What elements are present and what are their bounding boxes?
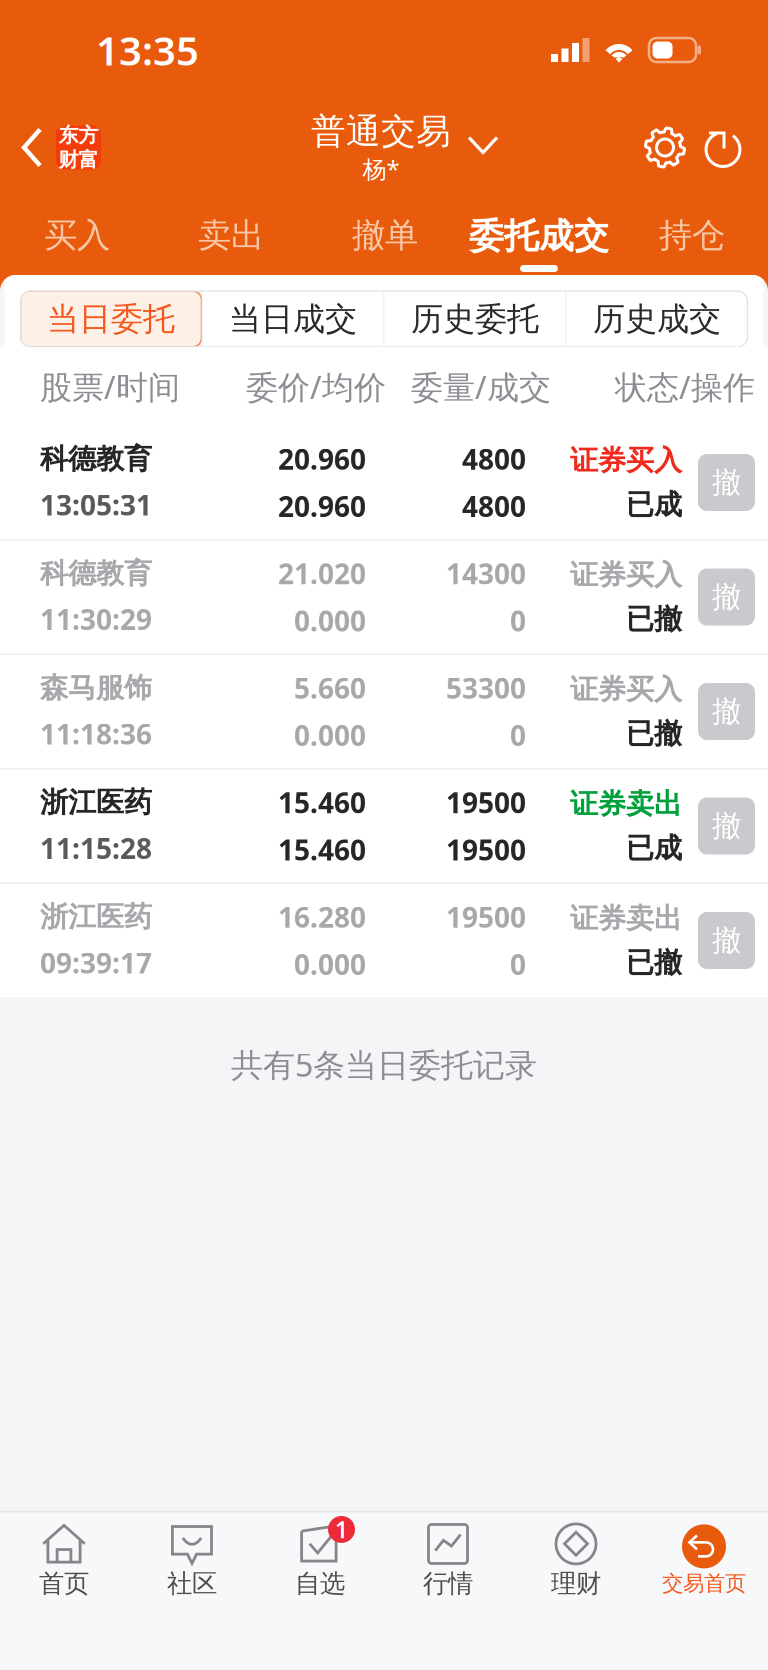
staticText: 53300 xyxy=(446,669,526,706)
staticText: 当日成交 xyxy=(229,299,357,339)
button[interactable]: 当日委托 xyxy=(20,291,201,347)
staticText: 15.460 xyxy=(278,784,366,821)
staticText: 已成 xyxy=(626,487,682,522)
staticText: 20.960 xyxy=(278,440,366,477)
staticText: 普通交易 xyxy=(311,110,451,153)
staticText: 5.660 xyxy=(294,669,366,706)
staticText: 状态/操作 xyxy=(615,365,755,408)
staticText: 浙江医药 xyxy=(40,785,152,820)
staticText: 13:35 xyxy=(96,23,199,76)
staticText: 11:18:36 xyxy=(40,715,152,752)
staticText: 证券卖出 xyxy=(570,787,682,821)
button[interactable]: 行情 xyxy=(384,1520,512,1600)
staticText: 自选 xyxy=(295,1568,345,1599)
staticText: 委量/成交 xyxy=(411,365,551,408)
staticText: 0.000 xyxy=(294,716,366,754)
button[interactable]: 撤 xyxy=(698,912,755,969)
staticText: 已撤 xyxy=(626,602,682,636)
staticText: 撤 xyxy=(712,693,741,729)
staticText: 09:39:17 xyxy=(40,944,152,981)
staticText: 19500 xyxy=(446,898,526,935)
staticText: 东方 xyxy=(58,123,98,147)
staticText: 森马服饰 xyxy=(40,671,152,705)
staticText: 0 xyxy=(510,602,526,639)
staticText: 撤 xyxy=(712,579,741,615)
button[interactable]: 1 xyxy=(256,1520,384,1600)
staticText: 杨* xyxy=(362,153,399,185)
staticText: 已成 xyxy=(626,831,682,865)
staticText: 股票/时间 xyxy=(40,365,180,408)
staticText: 1 xyxy=(335,1514,348,1544)
button[interactable]: 当日成交 xyxy=(202,291,383,347)
staticText: 13:05:31 xyxy=(40,486,152,523)
staticText: 14300 xyxy=(446,555,526,592)
staticText: 委托成交 xyxy=(469,215,609,258)
staticText: 浙江医药 xyxy=(40,900,152,934)
staticText: 0 xyxy=(510,945,526,983)
staticText: 共有5条当日委托记录 xyxy=(231,1043,537,1085)
button[interactable]: 历史委托 xyxy=(384,291,565,347)
button[interactable]: 撤 xyxy=(698,797,755,854)
staticText: 20.960 xyxy=(278,487,366,525)
staticText: 证券买入 xyxy=(570,558,682,592)
button[interactable]: 交易首页 xyxy=(640,1520,768,1600)
staticText: 历史委托 xyxy=(411,299,539,339)
staticText: 证券买入 xyxy=(570,443,682,477)
staticText: 证券买入 xyxy=(570,672,682,706)
button[interactable]: 撤单 xyxy=(352,195,418,275)
button[interactable]: 理财 xyxy=(512,1520,640,1600)
button[interactable]: 社区 xyxy=(128,1520,256,1600)
staticText: 撤 xyxy=(712,922,741,958)
staticText: 科德教育 xyxy=(40,442,152,476)
staticText: 4800 xyxy=(462,487,526,525)
button[interactable]: 刷新 xyxy=(700,124,746,170)
staticText: 15.460 xyxy=(278,831,366,868)
button[interactable]: 委托成交 xyxy=(469,195,609,275)
button[interactable]: 买入 xyxy=(44,195,110,275)
staticText: 证券卖出 xyxy=(570,901,682,935)
staticText: 0 xyxy=(510,716,526,754)
button[interactable]: 返回 东方财富 xyxy=(20,125,101,169)
staticText: 科德教育 xyxy=(40,556,152,591)
staticText: 撤 xyxy=(712,808,741,844)
staticText: 撤 xyxy=(712,464,741,500)
button[interactable]: 撤 xyxy=(698,454,755,511)
button[interactable]: 撤 xyxy=(698,683,755,740)
staticText: 历史成交 xyxy=(593,299,721,339)
staticText: 委价/均价 xyxy=(246,365,386,408)
staticText: 11:30:29 xyxy=(40,601,152,638)
staticText: 交易首页 xyxy=(662,1570,746,1597)
staticText: 撤单 xyxy=(352,215,418,256)
button[interactable]: 卖出 xyxy=(198,195,264,275)
staticText: 社区 xyxy=(167,1568,217,1599)
staticText: 16.280 xyxy=(278,898,366,935)
staticText: 首页 xyxy=(39,1568,89,1599)
staticText: 21.020 xyxy=(278,555,366,592)
staticText: 19500 xyxy=(446,784,526,821)
staticText: 行情 xyxy=(423,1568,473,1599)
staticText: 已撤 xyxy=(626,716,682,751)
staticText: 已撤 xyxy=(626,945,682,980)
staticText: 19500 xyxy=(446,831,526,868)
button[interactable]: 设置 xyxy=(642,124,688,170)
staticText: 买入 xyxy=(44,215,110,256)
staticText: 11:15:28 xyxy=(40,830,152,867)
button[interactable]: 撤 xyxy=(698,568,755,625)
staticText: 4800 xyxy=(462,440,526,477)
staticText: 理财 xyxy=(551,1568,601,1599)
button[interactable]: 持仓 xyxy=(659,195,725,275)
staticText: 0.000 xyxy=(294,945,366,983)
staticText: 财富 xyxy=(58,147,98,172)
button[interactable]: 首页 xyxy=(0,1520,128,1600)
staticText: 持仓 xyxy=(659,215,725,256)
staticText: 0.000 xyxy=(294,602,366,639)
staticText: 当日委托 xyxy=(47,299,175,339)
staticText: 卖出 xyxy=(198,215,264,256)
button[interactable]: 历史成交 xyxy=(566,291,747,347)
